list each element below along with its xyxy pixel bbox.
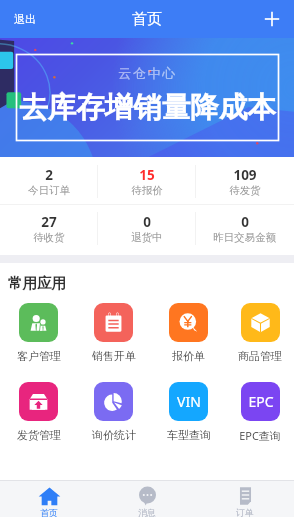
staticText: 订单 <box>236 507 254 517</box>
staticText: 发货管理 <box>17 428 61 442</box>
staticText: 首页 <box>40 507 58 517</box>
button[interactable]: 询价统计 <box>76 382 151 442</box>
staticText: 车型查询 <box>167 428 211 442</box>
staticText: 昨日交易金额 <box>213 231 276 244</box>
staticText: 27 <box>41 213 57 231</box>
staticText: 15 <box>139 166 155 184</box>
staticText: 待收货 <box>33 231 65 244</box>
staticText: 询价统计 <box>92 428 136 442</box>
staticText: 今日订单 <box>28 184 70 197</box>
button[interactable]: 销售开单 <box>76 303 151 363</box>
staticText: 首页 <box>132 10 162 29</box>
button[interactable]: 15 <box>98 166 195 197</box>
button[interactable]: 消息 <box>98 481 196 517</box>
staticText: 待报价 <box>131 184 163 197</box>
button[interactable]: 订单 <box>196 481 294 517</box>
staticText: 常用应用 <box>8 274 66 292</box>
staticText: 2 <box>45 166 53 184</box>
button[interactable]: VIN <box>151 382 226 442</box>
button[interactable]: 2 <box>0 166 97 197</box>
button[interactable]: EPC <box>226 382 294 443</box>
staticText: 退货中 <box>131 231 163 244</box>
staticText: 商品管理 <box>238 349 282 363</box>
staticText: 云仓中心 <box>118 65 177 81</box>
staticText: 0 <box>241 213 249 231</box>
button[interactable]: 商品管理 <box>226 303 294 363</box>
button[interactable]: 109 <box>196 166 293 197</box>
button[interactable]: 27 <box>0 213 97 244</box>
staticText: 报价单 <box>172 349 205 363</box>
staticText: EPC查询 <box>239 428 281 443</box>
staticText: 消息 <box>138 507 156 517</box>
button[interactable]: 首页 <box>0 481 98 517</box>
button[interactable]: 0 <box>98 213 195 244</box>
button[interactable]: 0 <box>196 213 293 244</box>
staticText: EPC <box>248 392 274 411</box>
staticText: 0 <box>143 213 151 231</box>
staticText: VIN <box>177 392 201 411</box>
staticText: 客户管理 <box>17 349 61 363</box>
button[interactable]: 发货管理 <box>1 382 76 442</box>
button[interactable]: Add <box>260 7 284 31</box>
staticText: 109 <box>233 166 257 184</box>
button[interactable]: 退出 <box>0 6 46 32</box>
button[interactable]: 客户管理 <box>1 303 76 363</box>
staticText: 去库存增销量降成本 <box>19 90 276 126</box>
staticText: 待发货 <box>229 184 261 197</box>
button[interactable]: 报价单 <box>151 303 226 363</box>
staticText: 销售开单 <box>92 349 136 363</box>
